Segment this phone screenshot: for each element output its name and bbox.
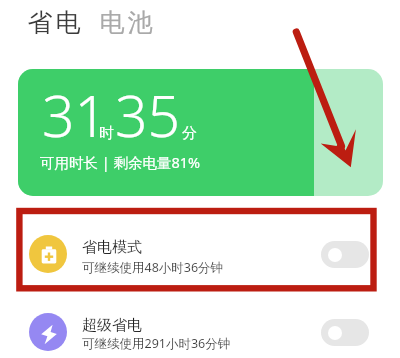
button[interactable]: 电池 <box>98 7 154 38</box>
button[interactable]: 超级省电 <box>0 294 400 358</box>
staticText: 分 <box>182 124 197 143</box>
button[interactable]: Toggle 省电模式 <box>321 241 369 268</box>
staticText: 可用时长 | 剩余电量81% <box>40 152 201 172</box>
staticText: 时 <box>99 124 114 143</box>
staticText: 31 <box>42 76 108 154</box>
staticText: 省电模式 <box>82 238 142 257</box>
button[interactable]: 31 <box>18 69 383 196</box>
staticText: 可继续使用291小时36分钟 <box>82 335 231 352</box>
button[interactable]: 省电 <box>26 7 82 38</box>
button[interactable]: Toggle 超级省电 <box>321 319 369 346</box>
staticText: 可继续使用48小时36分钟 <box>82 259 224 276</box>
staticText: 电池 <box>98 7 154 38</box>
staticText: 省电 <box>26 7 82 38</box>
button[interactable]: 省电模式 <box>0 216 400 292</box>
staticText: 35 <box>115 76 181 154</box>
staticText: 超级省电 <box>82 316 142 335</box>
